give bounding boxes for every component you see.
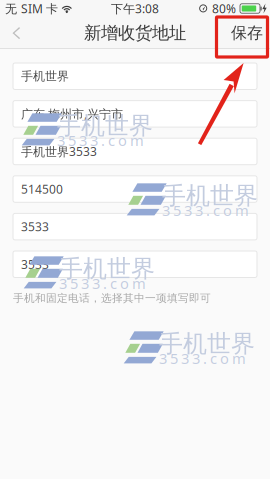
staticText: 新增收货地址 (84, 22, 186, 44)
staticText: 3533.com (59, 273, 146, 293)
button[interactable]: 手机世界 (13, 63, 257, 89)
staticText: 3533 (21, 219, 49, 235)
staticText: 保存 (231, 23, 263, 43)
staticText: 无 SIM 卡 (5, 0, 58, 16)
button[interactable]: 手机世界3533 (13, 138, 257, 165)
staticText: 下午3:08 (111, 0, 159, 16)
button[interactable]: 3533 (13, 213, 257, 240)
staticText: 3533.com (159, 348, 246, 368)
button[interactable]: 514500 (13, 176, 257, 202)
staticText: 手机世界 (57, 111, 153, 140)
staticText: 80% (212, 0, 236, 16)
button[interactable]: 3533 (13, 251, 257, 277)
staticText: 手机世界 (21, 69, 69, 84)
button[interactable]: 广东,梅州市,兴宁市 (13, 101, 257, 127)
staticText: 广东,梅州市,兴宁市 (21, 106, 123, 122)
staticText: 手机世界3533 (21, 143, 97, 159)
button[interactable]: 返回 (0, 17, 32, 49)
staticText: 手机和固定电话，选择其中一项填写即可 (13, 292, 211, 305)
staticText: 手机世界 (59, 254, 155, 283)
button[interactable]: 保存 (224, 17, 270, 49)
staticText: 手机世界 (162, 181, 258, 210)
staticText: 3533 (21, 256, 49, 272)
staticText: 514500 (21, 181, 63, 197)
staticText: 手机世界 (159, 329, 255, 358)
staticText: 3533.com (57, 130, 144, 150)
staticText: 3533.com (162, 200, 249, 220)
